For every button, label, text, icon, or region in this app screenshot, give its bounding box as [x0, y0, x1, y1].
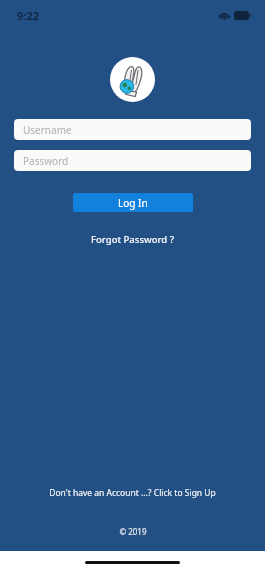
staticText: Log In [118, 196, 148, 210]
staticText: © 2019 [119, 526, 147, 537]
staticText: Password [23, 154, 69, 168]
staticText: Forgot Password ? [91, 233, 174, 246]
button[interactable]: Username [14, 119, 251, 140]
button[interactable]: Password [14, 150, 251, 171]
staticText: 9:22 [17, 8, 39, 23]
button[interactable]: Forgot Password ? [85, 230, 180, 249]
button[interactable]: Don't have an Account ...? Click to Sign… [43, 484, 222, 502]
staticText: Username [23, 123, 72, 137]
button[interactable]: Log In [73, 193, 193, 212]
staticText: Don't have an Account ...? Click to Sign… [49, 487, 216, 499]
